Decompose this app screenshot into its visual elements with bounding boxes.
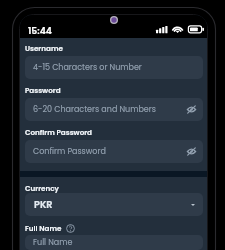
button[interactable]: 6-20 Characters and Numbers [25, 98, 203, 121]
other: Toggle password visibility [187, 148, 196, 155]
staticText: Currency [25, 183, 59, 193]
other: Expand [191, 204, 195, 206]
staticText: Full Name [25, 223, 62, 233]
staticText: Password [25, 85, 61, 95]
staticText: Full Name [33, 237, 196, 248]
button[interactable]: Full Name [25, 235, 203, 250]
staticText: 15:44 [28, 24, 52, 37]
staticText: Username [25, 43, 63, 53]
staticText: Confirm Password [33, 146, 187, 157]
staticText: 6-20 Characters and Numbers [33, 104, 187, 115]
staticText: 4-15 Characters or Number [33, 62, 196, 73]
other: Help [66, 224, 75, 233]
button[interactable]: Confirm Password [25, 140, 203, 163]
staticText: PKR [34, 198, 191, 212]
button[interactable]: PKR [25, 193, 203, 216]
button[interactable]: 4-15 Characters or Number [25, 56, 203, 79]
staticText: Confirm Password [25, 127, 92, 137]
other: Toggle password visibility [187, 106, 196, 113]
